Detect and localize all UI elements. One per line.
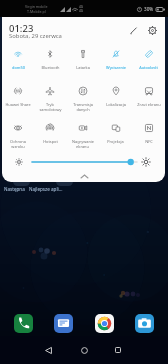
staticText: Bluetooth [41,65,60,70]
staticText: Huawei Share [5,102,31,107]
button[interactable]: Ochrona [2,121,34,155]
button[interactable]: Recents [107,339,129,361]
button[interactable]: Hotspot [34,121,66,155]
staticText: Wyciszenie [106,65,126,70]
button[interactable]: Messages [54,314,73,333]
staticText: samolotowy [39,107,62,112]
button[interactable]: Projekcja [99,121,132,155]
staticText: 01:23 [9,22,34,35]
staticText: dom50 [12,65,25,70]
staticText: Zrzut ekranu [137,102,161,107]
staticText: Sobota, 29 czerwca [9,32,62,40]
button[interactable]: Transmisja [66,84,99,118]
button[interactable]: Latarka [66,47,99,81]
button[interactable]: Edit [126,23,140,37]
button[interactable]: Chrome [95,314,114,333]
staticText: Hotspot [43,139,58,144]
button[interactable]: Lokalizacja [99,84,132,118]
staticText: Transmisja [73,102,93,107]
button[interactable]: Autoobrót [132,47,165,81]
staticText: ekranu [76,144,89,149]
staticText: 30% [144,6,154,12]
staticText: Nagrywanie [72,139,94,144]
button[interactable]: Zrzut ekranu [132,84,165,118]
staticText: Tryb [46,102,54,107]
staticText: Ochrona [10,139,26,144]
button[interactable]: Collapse [74,174,94,179]
button[interactable]: Bluetooth [34,47,66,81]
staticText: Latarka [76,65,90,70]
staticText: wzroku [11,144,25,149]
button[interactable]: NFC [132,121,165,155]
button[interactable]: dom50 [2,47,34,81]
staticText: T-Mobile.pl [27,9,46,14]
staticText: danych [76,107,90,112]
button[interactable]: Phone [14,314,33,333]
button[interactable]: Camera [135,314,154,333]
staticText: Virgin mobile [25,4,48,9]
button[interactable]: Huawei Share [2,84,34,118]
staticText: Lokalizacja [106,102,126,107]
staticText: Autoobrót [139,65,158,70]
staticText: 4G [79,5,84,9]
staticText: Projekcja [107,139,124,144]
button[interactable]: Back [37,339,59,361]
staticText: Najlepsze apli... [29,186,63,192]
button[interactable]: Settings [145,23,159,37]
button[interactable]: Home [73,339,95,361]
staticText: 4G [79,9,84,13]
staticText: NFC [145,139,153,144]
button[interactable]: Tryb [34,84,66,118]
button[interactable]: Nagrywanie [66,121,99,155]
button[interactable]: Wyciszenie [99,47,132,81]
staticText: Następna [4,186,25,192]
